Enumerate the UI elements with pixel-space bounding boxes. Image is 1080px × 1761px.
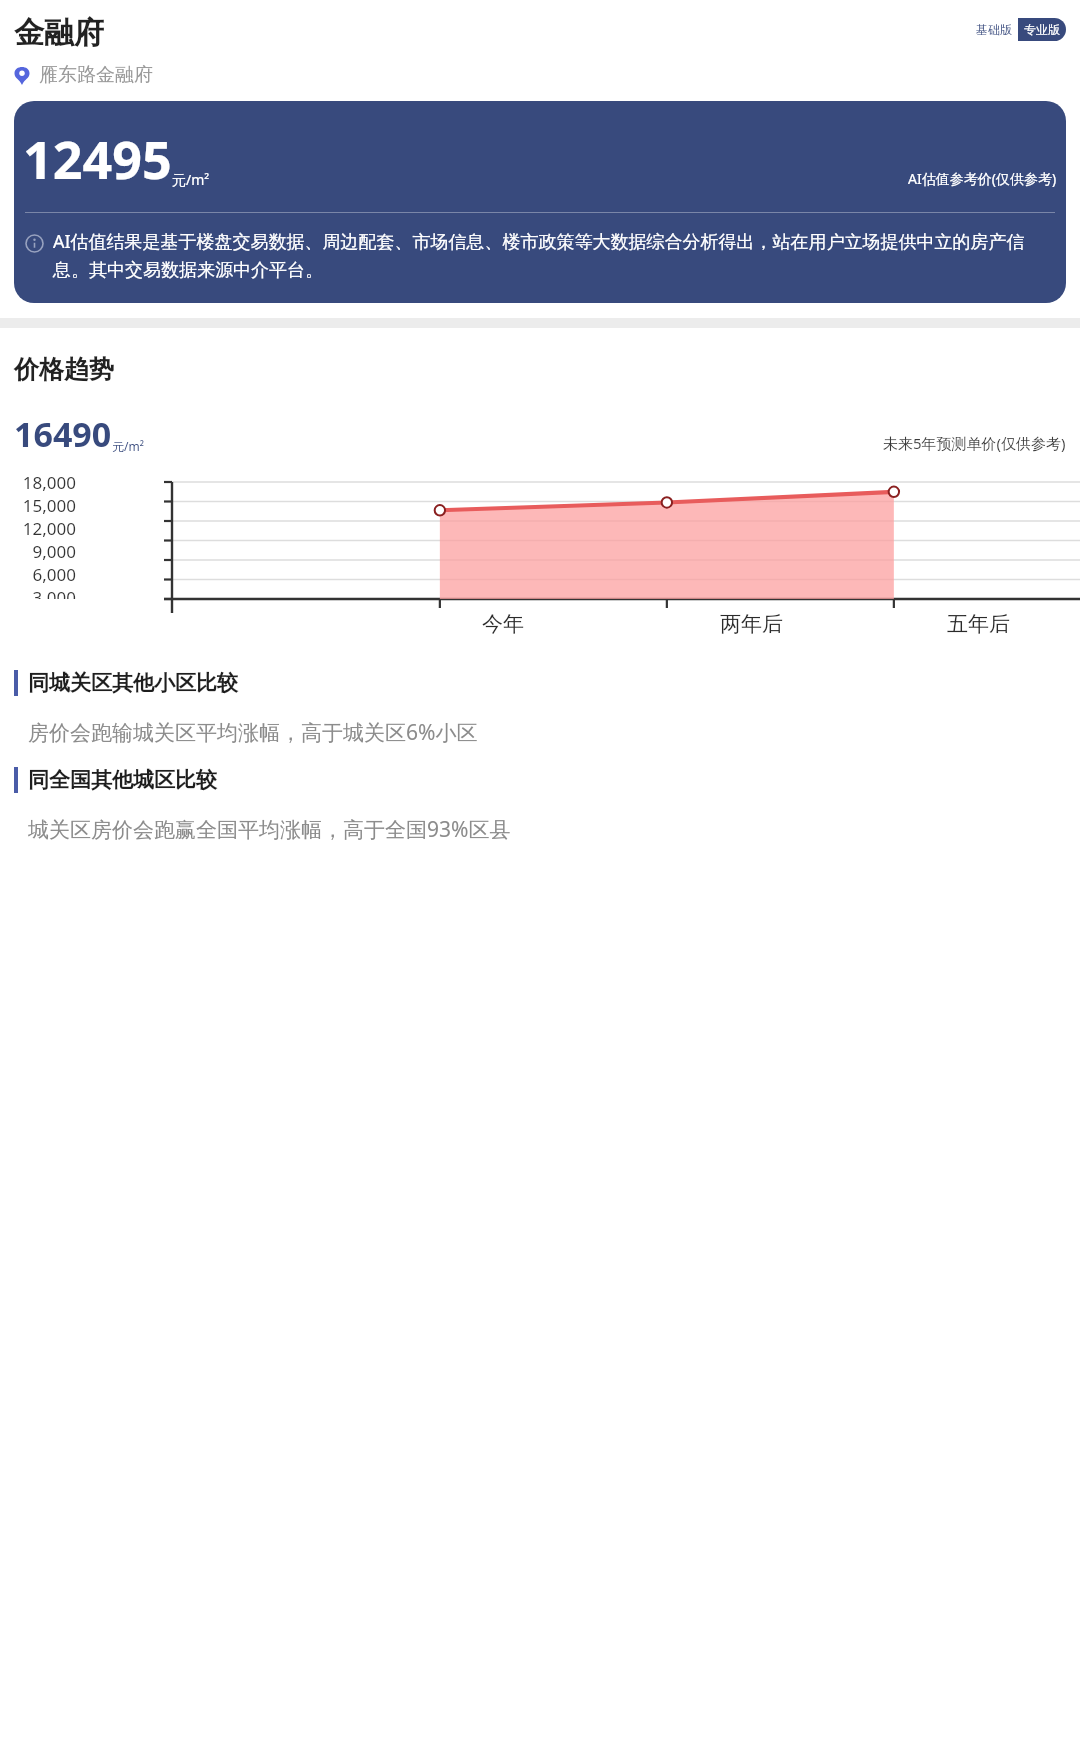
staticText: 金融府: [14, 14, 104, 52]
staticText: 价格趋势: [14, 354, 114, 385]
staticText: 五年后: [947, 611, 1010, 637]
staticText: 基础版: [976, 22, 1012, 37]
staticText: AI估值参考价(仅供参考): [908, 169, 1057, 188]
staticText: 15,000: [22, 494, 76, 517]
staticText: 同城关区其他小区比较: [28, 670, 238, 696]
staticText: 城关区房价会跑赢全国平均涨幅，高于全国93%区县: [28, 815, 511, 844]
staticText: 12495: [23, 123, 172, 194]
staticText: 专业版: [1024, 22, 1060, 37]
button[interactable]: 同城关区其他小区比较: [14, 670, 1080, 696]
staticText: AI估值结果是基于楼盘交易数据、周边配套、市场信息、楼市政策等大数据综合分析得出…: [53, 229, 1055, 281]
staticText: 6,000: [32, 563, 76, 586]
staticText: 16490: [14, 411, 112, 457]
staticText: 同全国其他城区比较: [28, 767, 217, 793]
staticText: 今年: [482, 611, 524, 637]
staticText: 雁东路金融府: [39, 63, 153, 87]
staticText: 未来5年预测单价(仅供参考): [883, 433, 1066, 453]
button[interactable]: 同全国其他城区比较: [14, 767, 1080, 793]
staticText: 房价会跑输城关区平均涨幅，高于城关区6%小区: [28, 718, 478, 747]
staticText: 12,000: [22, 517, 76, 540]
staticText: 3,000: [32, 586, 76, 599]
staticText: 18,000: [22, 471, 76, 494]
button[interactable]: 基础版: [970, 18, 1018, 41]
staticText: 元/m²: [172, 170, 210, 189]
button[interactable]: 12495: [14, 101, 1066, 303]
button[interactable]: 专业版: [1018, 18, 1066, 41]
staticText: 元/m²: [112, 438, 144, 454]
staticText: 两年后: [720, 611, 783, 637]
staticText: 9,000: [32, 540, 76, 563]
